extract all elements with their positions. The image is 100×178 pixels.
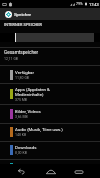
staticText: 148 KB [15,133,27,137]
button[interactable]: Recent apps [72,165,85,178]
button[interactable]: Apps (Appdaten & [0,84,100,104]
staticText: Verfügbar [15,70,34,75]
button[interactable]: INTERNER SPEICHER [0,20,100,33]
staticText: Bilder, Videos [15,109,41,114]
staticText: Speicher [14,12,32,17]
button[interactable]: Audio (Musik, Töne usw.) [0,123,100,140]
button[interactable]: Gesamtspeicher [0,47,100,65]
button[interactable]: Downloads [0,141,100,158]
staticText: 12,11 GB [4,57,18,61]
button[interactable]: Verfügbar [0,66,100,83]
staticText: Gesamtspeicher [4,50,39,56]
button[interactable]: Settings [5,11,12,18]
button[interactable]: Home [44,165,57,178]
staticText: 8,00 KB [15,151,27,155]
staticText: 2,00 MB [15,169,28,173]
staticText: Apps (Appdaten & [15,87,50,92]
button[interactable]: Back [15,165,28,178]
staticText: 17:43 [89,2,99,7]
staticText: Medieninhalte) [15,92,44,97]
staticText: 79% [76,2,83,6]
staticText: INTERNER SPEICHER [4,22,43,26]
button[interactable]: Bilder, Videos [0,105,100,123]
staticText: Audio (Musik, Töne usw.) [15,127,63,132]
staticText: 11,80 GB [15,76,29,80]
staticText: 375 MB [15,98,28,102]
staticText: Downloads [15,145,37,150]
button[interactable]: Sonstige Dateien [0,159,100,176]
staticText: 3,66 MB [15,115,28,119]
